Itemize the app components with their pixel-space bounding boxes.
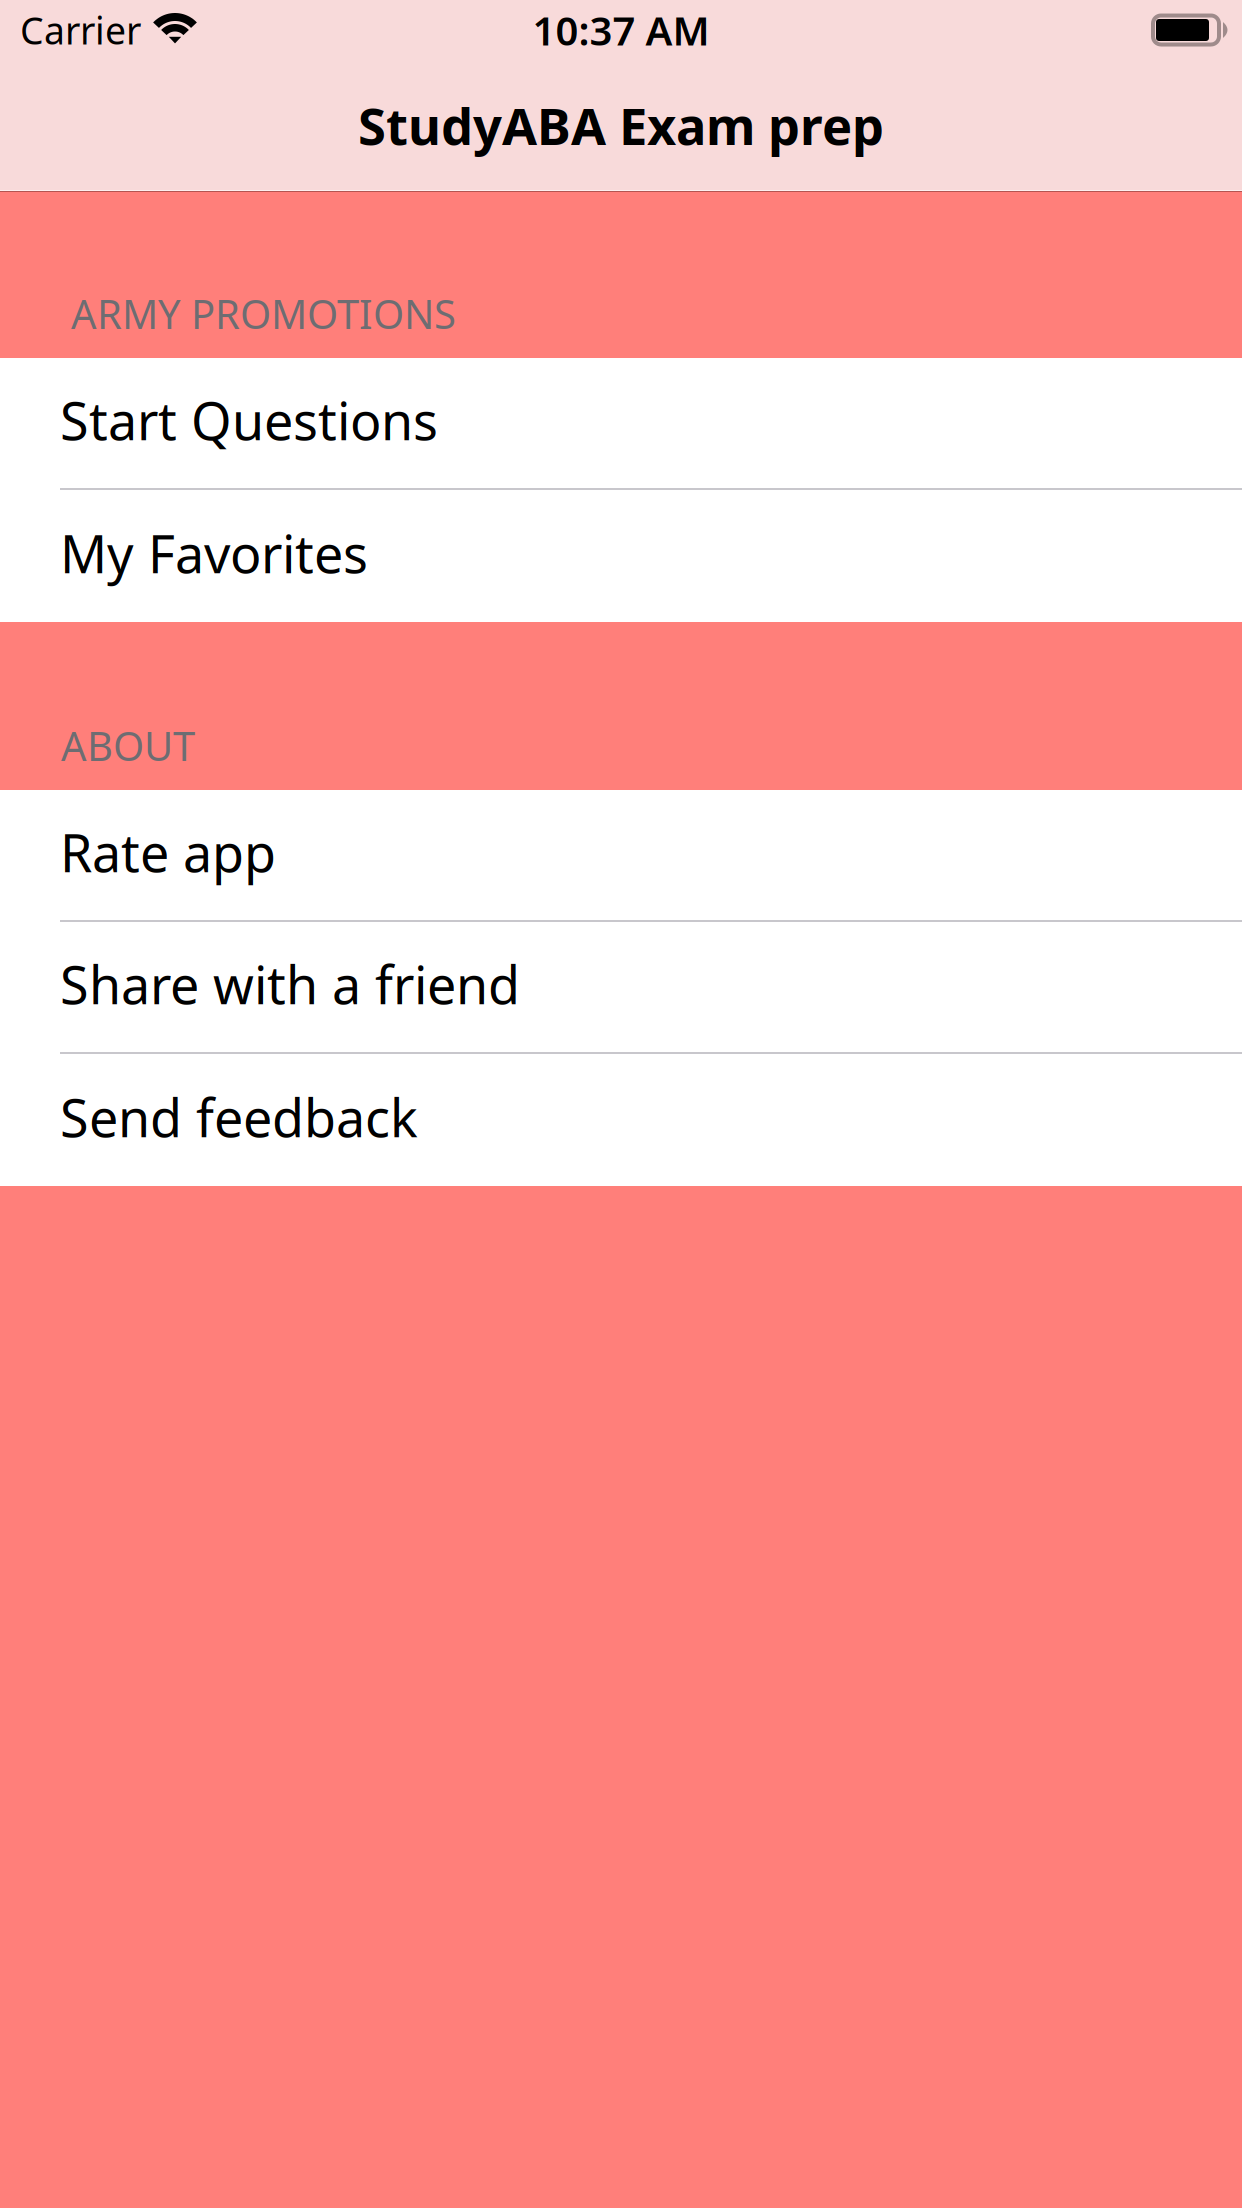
button[interactable]: Share with a friend <box>0 922 1242 1054</box>
staticText: My Favorites <box>60 518 368 588</box>
staticText: Send feedback <box>60 1082 418 1152</box>
button[interactable]: Send feedback <box>0 1054 1242 1186</box>
staticText: StudyABA Exam prep <box>358 92 884 159</box>
staticText: Rate app <box>60 817 276 887</box>
staticText: Share with a friend <box>60 949 520 1019</box>
staticText: Start Questions <box>60 385 438 455</box>
staticText: ABOUT <box>61 719 195 772</box>
staticText: ARMY PROMOTIONS <box>71 287 456 340</box>
button[interactable]: My Favorites <box>0 490 1242 622</box>
button[interactable]: Start Questions <box>0 358 1242 490</box>
button[interactable]: Rate app <box>0 790 1242 922</box>
staticText: Carrier <box>20 5 141 55</box>
staticText: 10:37 AM <box>532 3 709 56</box>
